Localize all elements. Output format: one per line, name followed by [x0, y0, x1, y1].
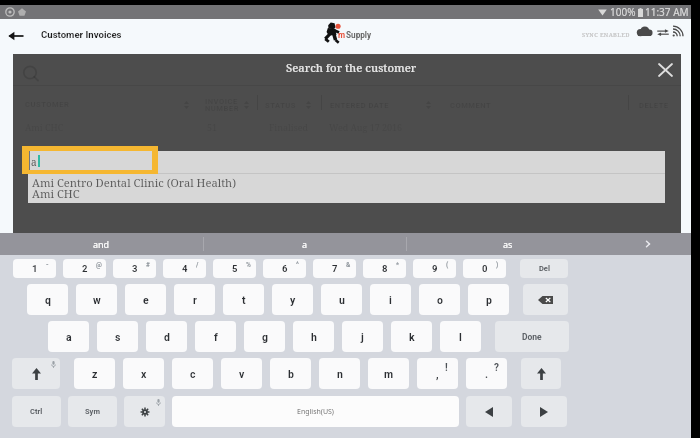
button[interactable]: x	[123, 358, 164, 389]
staticText: /	[196, 261, 199, 269]
button[interactable]: y	[272, 284, 313, 315]
staticText: m	[384, 368, 394, 380]
staticText: z	[92, 368, 98, 380]
staticText: Customer Invoices	[41, 29, 122, 40]
button[interactable]: g	[244, 321, 285, 352]
button[interactable]: Keyboard settings	[124, 396, 165, 427]
staticText: j	[361, 331, 364, 343]
staticText: 3	[132, 263, 138, 274]
button[interactable]: Backspace	[523, 284, 568, 315]
button[interactable]: 0	[463, 259, 506, 278]
button[interactable]: 3	[113, 259, 156, 278]
staticText: b	[288, 368, 294, 380]
button[interactable]: v	[221, 358, 262, 389]
staticText: Supply	[346, 30, 372, 40]
button[interactable]: as	[406, 233, 609, 255]
staticText: as	[503, 238, 513, 250]
staticText: u	[339, 294, 345, 306]
button[interactable]: e	[125, 284, 166, 315]
staticText: #	[146, 261, 150, 269]
button[interactable]: 9	[413, 259, 456, 278]
button[interactable]: and	[0, 233, 203, 255]
staticText: !	[445, 362, 448, 374]
button[interactable]: Move cursor right	[521, 396, 567, 427]
button[interactable]: Del	[520, 259, 568, 278]
staticText: a	[31, 155, 37, 169]
staticText: Done	[522, 332, 542, 342]
button[interactable]: t	[223, 284, 264, 315]
button[interactable]: j	[342, 321, 383, 352]
button[interactable]: u	[321, 284, 362, 315]
button[interactable]: s	[97, 321, 138, 352]
button[interactable]: 7	[313, 259, 356, 278]
staticText: Search for the customer	[286, 60, 417, 75]
button[interactable]: Back	[8, 27, 24, 45]
staticText: k	[409, 331, 415, 343]
button[interactable]: p	[468, 284, 509, 315]
button[interactable]: h	[293, 321, 334, 352]
staticText: h	[311, 331, 317, 343]
button[interactable]: 6	[263, 259, 306, 278]
button[interactable]: f	[195, 321, 236, 352]
button[interactable]: Customer Invoices	[41, 29, 122, 40]
button[interactable]: Sym	[68, 396, 117, 427]
staticText: s	[115, 331, 121, 343]
button[interactable]: Signal	[672, 27, 682, 37]
staticText: 9	[432, 263, 438, 274]
button[interactable]: More suggestions	[630, 233, 666, 255]
button[interactable]: a	[29, 151, 152, 170]
button[interactable]: a	[203, 233, 406, 255]
staticText: o	[437, 294, 443, 306]
button[interactable]: q	[27, 284, 68, 315]
button[interactable]: Cloud sync	[636, 26, 653, 37]
button[interactable]: d	[146, 321, 187, 352]
staticText: Ami CHC	[32, 186, 80, 201]
button[interactable]: Done	[495, 321, 569, 352]
button[interactable]: o	[419, 284, 460, 315]
staticText: SYNC ENABLED	[582, 31, 630, 39]
staticText: 0	[482, 263, 488, 274]
staticText: (	[446, 261, 449, 269]
staticText: y	[290, 294, 296, 306]
button[interactable]: w	[76, 284, 117, 315]
button[interactable]: c	[172, 358, 213, 389]
button[interactable]: Move cursor left	[466, 396, 512, 427]
staticText: @	[96, 261, 102, 269]
button[interactable]: 2	[63, 259, 106, 278]
button[interactable]: 5	[213, 259, 256, 278]
button[interactable]: n	[319, 358, 360, 389]
staticText: -	[46, 261, 49, 269]
staticText: Sym	[85, 407, 100, 416]
button[interactable]: Transfer	[657, 29, 669, 36]
button[interactable]: m	[368, 358, 409, 389]
button[interactable]: 1	[13, 259, 56, 278]
button[interactable]: b	[270, 358, 311, 389]
button[interactable]: ,	[417, 358, 458, 389]
button[interactable]: 8	[363, 259, 406, 278]
staticText: x	[141, 368, 147, 380]
button[interactable]: Ctrl	[12, 396, 61, 427]
button[interactable]: Shift	[521, 358, 561, 389]
button[interactable]: i	[370, 284, 411, 315]
button[interactable]: l	[440, 321, 481, 352]
button[interactable]: a	[48, 321, 89, 352]
button[interactable]: 4	[163, 259, 206, 278]
button[interactable]: Close	[651, 57, 680, 83]
button[interactable]: Shift	[12, 358, 60, 389]
staticText: a	[66, 331, 72, 343]
staticText: w	[93, 294, 101, 306]
button[interactable]: .	[466, 358, 507, 389]
staticText: %	[246, 261, 251, 269]
staticText: 100%	[610, 5, 636, 19]
button[interactable]: r	[174, 284, 215, 315]
button[interactable]: English(US)	[172, 396, 459, 427]
button[interactable]: z	[74, 358, 115, 389]
button[interactable]: k	[391, 321, 432, 352]
staticText: n	[337, 368, 343, 380]
staticText: )	[496, 261, 499, 269]
